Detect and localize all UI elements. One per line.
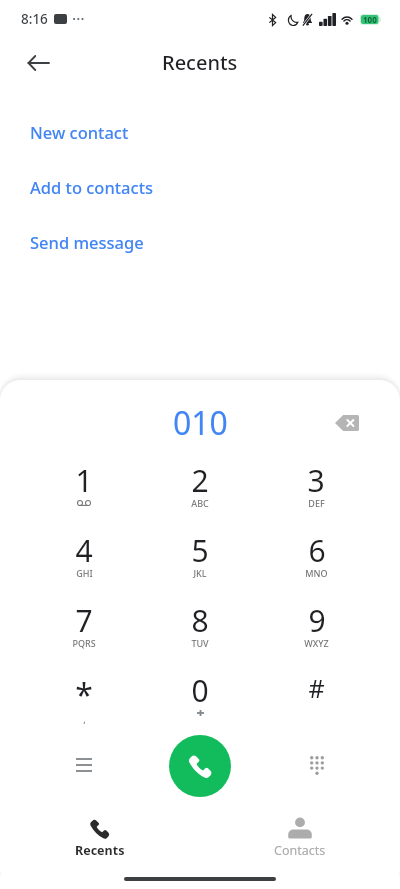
button[interactable]: 2 xyxy=(142,448,258,518)
staticText: PQRS xyxy=(72,637,96,649)
button[interactable]: 1 xyxy=(26,448,142,518)
staticText: * xyxy=(75,673,93,717)
staticText: 1 xyxy=(75,460,93,501)
staticText: 9 xyxy=(308,600,326,641)
button[interactable]: Menu xyxy=(60,741,107,788)
button[interactable]: 6 xyxy=(258,518,374,588)
staticText: 2 xyxy=(191,460,209,501)
staticText: 100 xyxy=(363,14,377,25)
button[interactable]: 4 xyxy=(26,518,142,588)
button[interactable]: 3 xyxy=(258,448,374,518)
button[interactable]: 0 xyxy=(142,658,258,728)
staticText: DEF xyxy=(308,497,325,509)
button[interactable]: # xyxy=(258,658,374,728)
staticText: Add to contacts xyxy=(30,176,153,198)
staticText: 7 xyxy=(75,600,93,641)
staticText: 010 xyxy=(173,401,228,445)
staticText: MNO xyxy=(305,567,328,579)
staticText: WXYZ xyxy=(304,637,329,649)
staticText: 8:16 xyxy=(21,10,48,28)
staticText: Contacts xyxy=(274,842,326,859)
button[interactable]: Recents xyxy=(0,816,200,866)
button[interactable]: 5 xyxy=(142,518,258,588)
button[interactable]: Contacts xyxy=(200,816,400,866)
button[interactable]: Add to contacts xyxy=(0,166,400,208)
staticText: Send message xyxy=(30,231,144,253)
button[interactable]: Send message xyxy=(0,221,400,263)
staticText: JKL xyxy=(193,567,207,579)
staticText: Recents xyxy=(162,49,238,76)
staticText: ABC xyxy=(191,497,209,509)
button[interactable]: Back xyxy=(14,39,62,87)
staticText: TUV xyxy=(191,637,209,649)
staticText: 3 xyxy=(307,460,325,501)
button[interactable]: Dialpad xyxy=(293,743,340,790)
button[interactable]: 9 xyxy=(258,588,374,658)
staticText: New contact xyxy=(30,121,129,143)
staticText: # xyxy=(308,671,325,705)
button[interactable]: Call xyxy=(169,735,231,797)
button[interactable]: New contact xyxy=(0,111,400,153)
button[interactable]: 8 xyxy=(142,588,258,658)
button[interactable]: * xyxy=(26,658,142,728)
staticText: Recents xyxy=(75,842,125,859)
button[interactable]: 7 xyxy=(26,588,142,658)
staticText: 6 xyxy=(308,530,326,571)
staticText: 0 xyxy=(191,670,209,711)
staticText: , xyxy=(83,713,86,725)
button[interactable]: Backspace xyxy=(325,401,369,445)
staticText: GHI xyxy=(76,567,93,579)
staticText: 8 xyxy=(191,600,209,641)
staticText: 4 xyxy=(75,530,93,571)
staticText: 5 xyxy=(191,530,209,571)
